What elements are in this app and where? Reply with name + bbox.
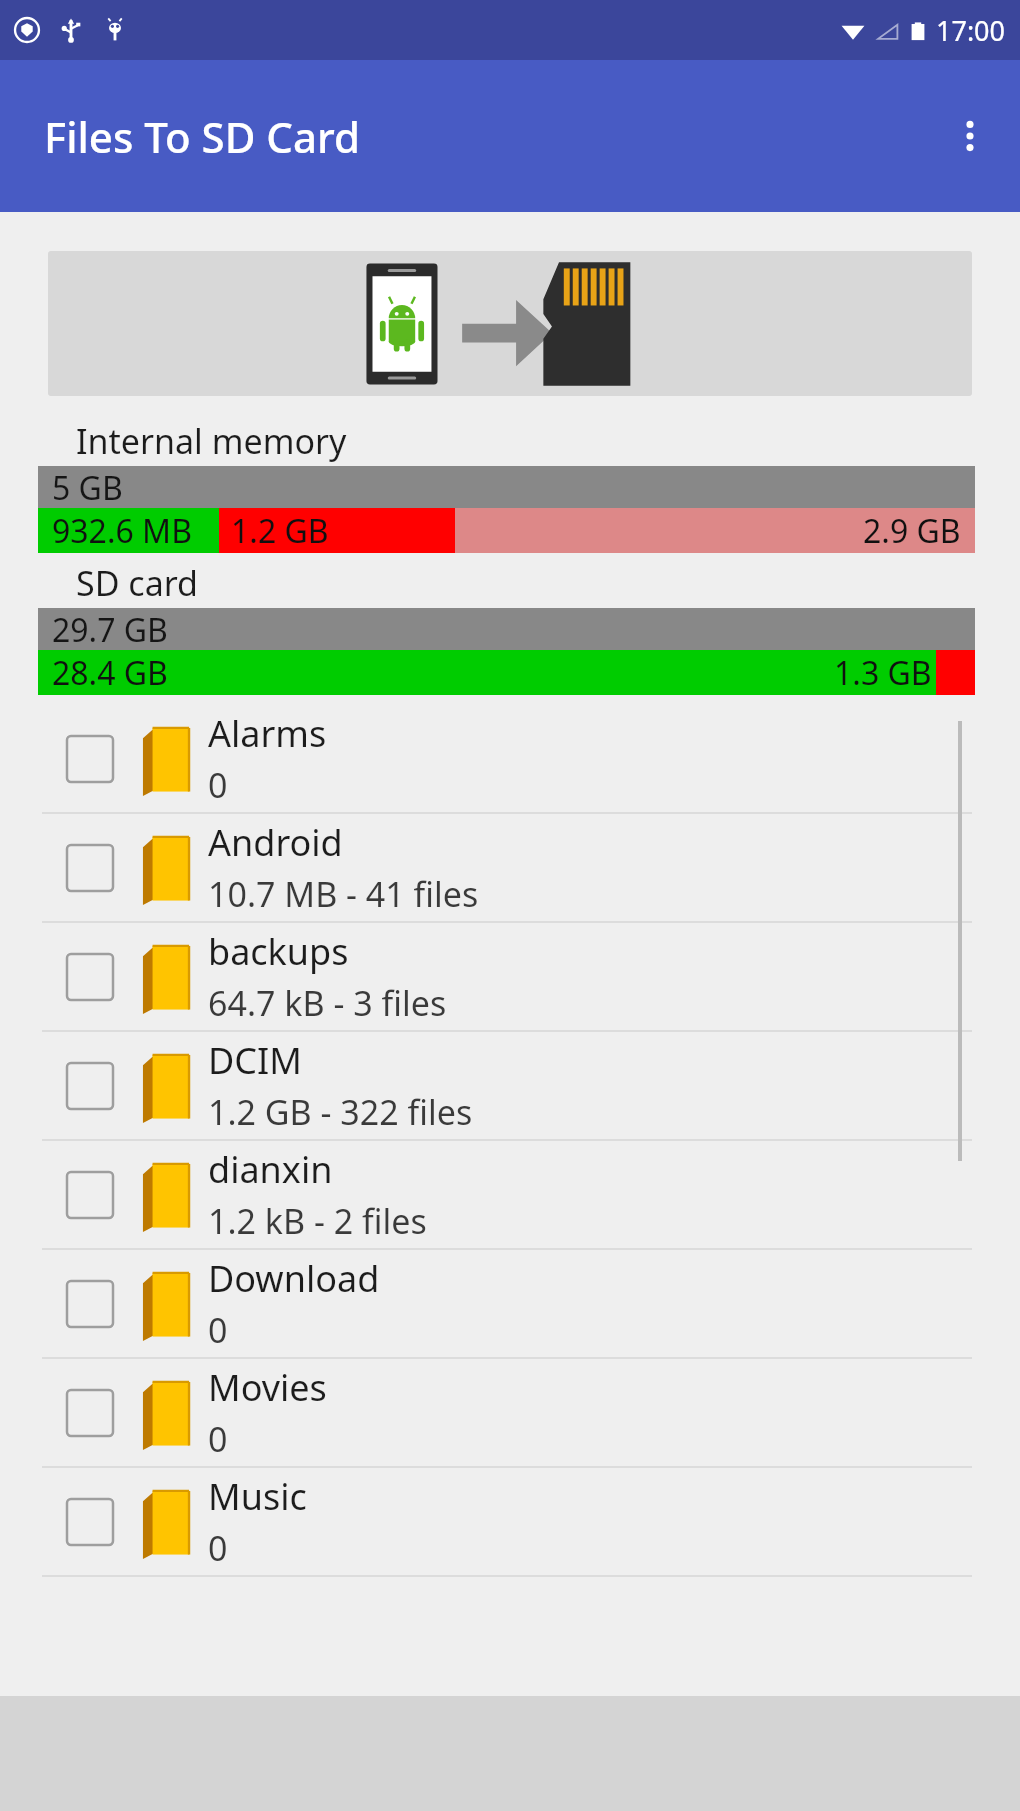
button[interactable]: More options	[932, 98, 1008, 174]
staticText: Movies	[208, 1363, 327, 1412]
button[interactable]: Select Movies	[0, 1359, 1020, 1466]
button[interactable]: Select dianxin	[0, 1141, 1020, 1248]
button[interactable]: Select Alarms	[0, 705, 1020, 812]
staticText: 932.6 MB	[52, 509, 192, 553]
button[interactable]: Select Android	[0, 814, 1020, 921]
button[interactable]: Select Movies	[66, 1389, 114, 1437]
staticText: dianxin	[208, 1145, 333, 1194]
button[interactable]: Select backups	[0, 923, 1020, 1030]
staticText: 17:00	[936, 12, 1006, 49]
staticText: 2.9 GB	[863, 509, 961, 553]
button[interactable]: Select backups	[66, 953, 114, 1001]
button[interactable]: Select Music	[66, 1498, 114, 1546]
staticText: SD card	[76, 560, 198, 606]
staticText: 28.4 GB	[52, 651, 168, 695]
staticText: Music	[208, 1472, 307, 1521]
staticText: 0	[208, 1525, 228, 1571]
staticText: 0	[208, 1416, 228, 1462]
staticText: Alarms	[208, 709, 327, 758]
button[interactable]: Select Download	[0, 1250, 1020, 1357]
staticText: 0	[208, 1307, 228, 1353]
staticText: Files To SD Card	[44, 108, 360, 165]
staticText: DCIM	[208, 1036, 302, 1085]
button[interactable]: Select dianxin	[66, 1171, 114, 1219]
button[interactable]: Select Alarms	[66, 735, 114, 783]
staticText: 64.7 kB - 3 files	[208, 980, 447, 1026]
staticText: 0	[208, 762, 228, 808]
button[interactable]: Select Download	[66, 1280, 114, 1328]
staticText: 1.2 GB - 322 files	[208, 1089, 473, 1135]
staticText: backups	[208, 927, 349, 976]
staticText: 10.7 MB - 41 files	[208, 871, 479, 917]
staticText: 1.3 GB	[834, 651, 932, 695]
staticText: 29.7 GB	[52, 608, 168, 650]
button[interactable]: Select Music	[0, 1468, 1020, 1575]
button[interactable]: Select DCIM	[0, 1032, 1020, 1139]
button[interactable]: Select Android	[66, 844, 114, 892]
staticText: Internal memory	[76, 418, 347, 464]
staticText: 1.2 GB	[231, 509, 329, 553]
staticText: 5 GB	[52, 466, 123, 508]
staticText: Download	[208, 1254, 380, 1303]
staticText: 1.2 kB - 2 files	[208, 1198, 427, 1244]
button[interactable]: Select DCIM	[66, 1062, 114, 1110]
staticText: Android	[208, 818, 343, 867]
